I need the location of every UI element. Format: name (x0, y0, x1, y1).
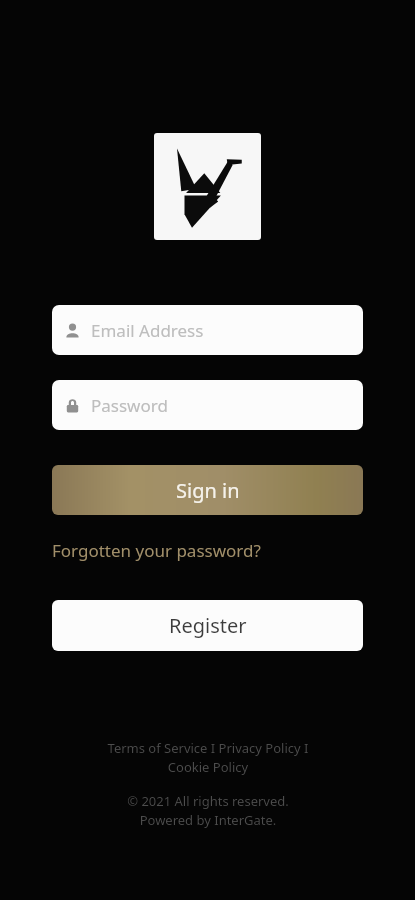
button[interactable]: Email Address (52, 305, 363, 355)
staticText: Email Address (91, 319, 204, 342)
button[interactable]: Terms of Service I Privacy Policy I Cook… (58, 739, 358, 776)
button[interactable]: Sign in (52, 465, 363, 515)
staticText: Sign in (176, 477, 240, 504)
other: App logo (154, 133, 261, 240)
staticText: Password (91, 394, 168, 417)
button[interactable]: Forgotten your password? (52, 537, 261, 564)
staticText: © 2021 All rights reserved. Powered by I… (58, 792, 358, 829)
button[interactable]: Password (52, 380, 363, 430)
staticText: Register (169, 612, 247, 639)
button[interactable]: Register (52, 600, 363, 651)
